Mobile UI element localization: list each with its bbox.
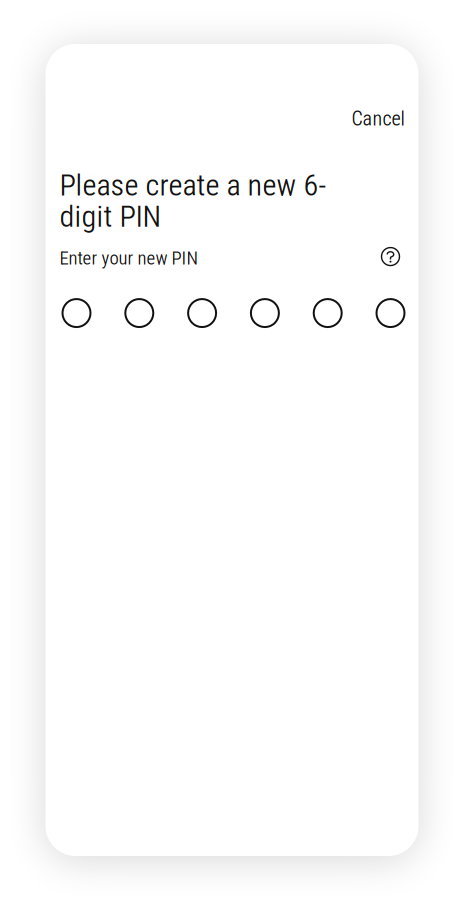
staticText: Cancel — [351, 107, 404, 130]
button[interactable]: PIN entry field, 6 digits — [45, 293, 418, 333]
staticText: Please create a new 6- — [59, 167, 326, 203]
button[interactable]: Help — [370, 237, 410, 277]
staticText: Enter your new PIN — [59, 247, 198, 269]
button[interactable]: Cancel — [335, 96, 418, 141]
staticText: digit PIN — [59, 199, 161, 234]
